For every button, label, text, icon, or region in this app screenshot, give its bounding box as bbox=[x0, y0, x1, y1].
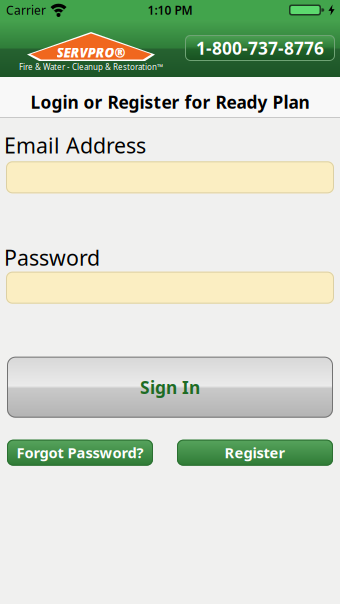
staticText: Fire & Water - Cleanup & Restoration™ bbox=[19, 61, 163, 72]
button[interactable]: Sign In bbox=[7, 357, 333, 418]
staticText: Login or Register for Ready Plan bbox=[30, 90, 309, 113]
button[interactable]: Password bbox=[6, 272, 334, 304]
staticText: 1:10 PM bbox=[147, 2, 192, 18]
staticText: Carrier bbox=[6, 2, 46, 18]
button[interactable]: Email Address bbox=[6, 161, 334, 193]
staticText: SERVPRO® bbox=[56, 43, 125, 61]
button[interactable]: 1-800-737-8776 bbox=[185, 35, 335, 61]
staticText: Email Address bbox=[4, 131, 146, 159]
button[interactable]: Forgot Password? bbox=[7, 440, 153, 466]
staticText: 1-800-737-8776 bbox=[196, 36, 324, 59]
staticText: Password bbox=[4, 243, 100, 272]
staticText: Forgot Password? bbox=[16, 443, 143, 462]
button[interactable]: Register bbox=[177, 440, 333, 466]
staticText: Sign In bbox=[140, 376, 200, 399]
staticText: Register bbox=[224, 443, 285, 462]
